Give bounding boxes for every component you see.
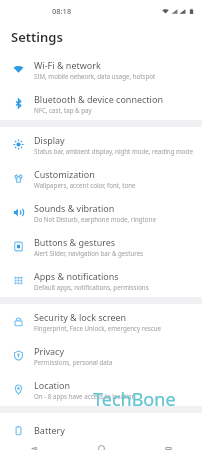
staticText: Alert Slider, navigation bar & gestures [34, 249, 144, 257]
staticText: Buttons & gestures [34, 236, 116, 248]
staticText: Status bar, ambient display, night mode,… [34, 147, 193, 155]
staticText: Customization [34, 168, 95, 180]
staticText: Security & lock screen [34, 311, 127, 323]
button[interactable]: Display [0, 127, 202, 161]
button[interactable]: Security & lock screen [0, 304, 202, 338]
staticText: Sounds & vibration [34, 202, 115, 214]
button[interactable]: Wi-Fi & network [0, 52, 202, 86]
staticText: 08:18 [52, 6, 72, 16]
staticText: On - 8 apps have access to location [34, 392, 136, 400]
button[interactable]: Sounds & vibration [0, 195, 202, 229]
staticText: Privacy [34, 345, 65, 357]
staticText: Display [34, 134, 65, 146]
staticText: Do Not Disturb, earphone mode, ringtone [34, 215, 156, 223]
button[interactable]: Location [0, 372, 202, 406]
staticText: Permissions, personal data [34, 358, 113, 366]
staticText: Wallpapers, accent color, font, tone [34, 181, 136, 189]
button[interactable]: Privacy [0, 338, 202, 372]
staticText: Battery [34, 424, 65, 436]
staticText: NFC, cast, tap & pay [34, 106, 92, 114]
button[interactable]: Apps & notifications [0, 263, 202, 297]
staticText: Fingerprint, Face Unlock, emergency resc… [34, 324, 162, 332]
button[interactable]: Buttons & gestures [0, 229, 202, 263]
staticText: SIM, mobile network, data usage, hotspot [34, 72, 156, 80]
staticText: Settings [11, 28, 63, 46]
staticText: Bluetooth & device connection [34, 93, 163, 105]
staticText: Wi-Fi & network [34, 59, 101, 71]
staticText: Location [34, 379, 71, 391]
button[interactable]: Bluetooth & device connection [0, 86, 202, 120]
staticText: Apps & notifications [34, 270, 119, 282]
button[interactable]: Recents [135, 447, 202, 450]
button[interactable]: Back [0, 447, 68, 450]
button[interactable]: Home [68, 447, 135, 450]
staticText: Default apps, notifications, permissions [34, 283, 149, 291]
staticText: TechBone [93, 387, 176, 412]
button[interactable]: Battery [0, 413, 202, 447]
button[interactable]: Customization [0, 161, 202, 195]
